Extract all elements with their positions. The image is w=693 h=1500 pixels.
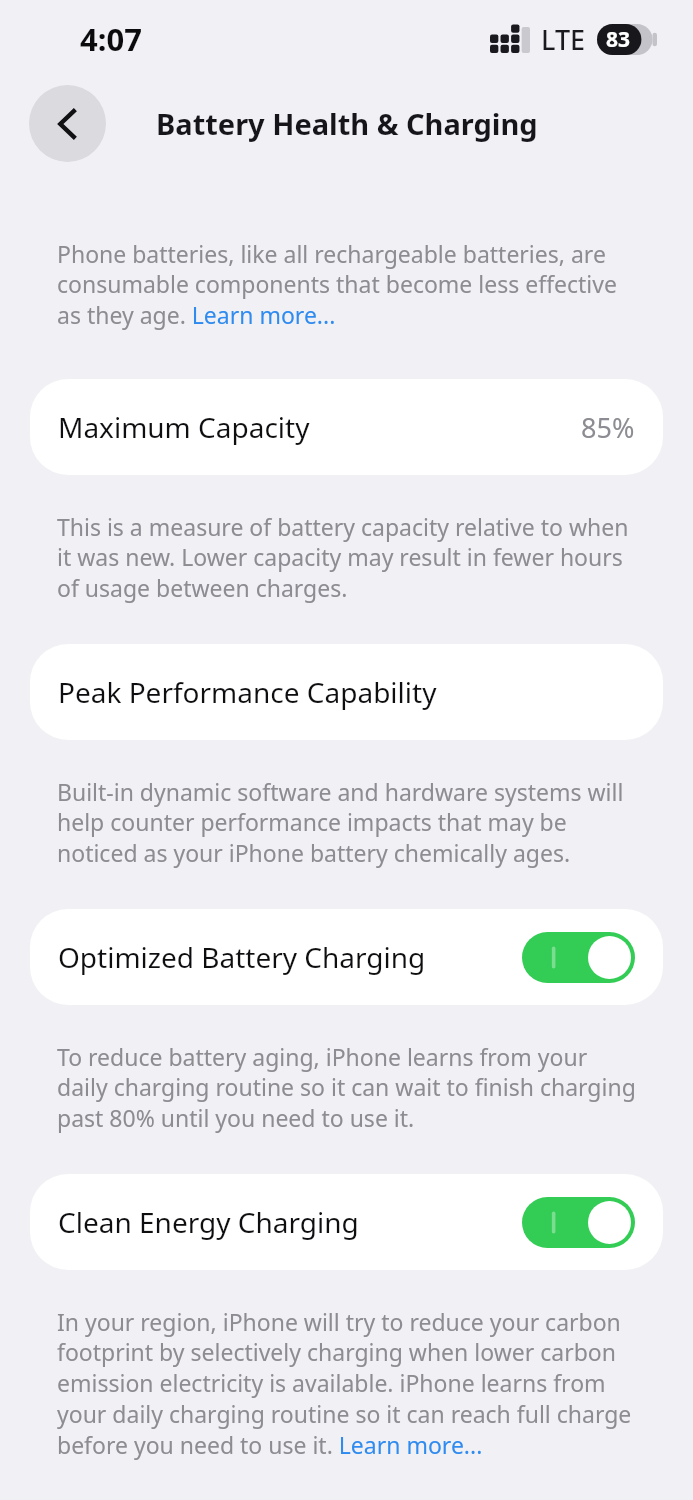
button[interactable]: Toggle	[522, 932, 635, 983]
staticText: Battery Health & Charging	[156, 104, 538, 143]
staticText: Phone batteries, like all rechargeable b…	[57, 238, 636, 331]
staticText: Clean Energy Charging	[58, 1203, 359, 1241]
staticText: Built-in dynamic software and hardware s…	[57, 776, 636, 869]
staticText: 85%	[581, 409, 635, 446]
button[interactable]: Peak Performance Capability	[30, 644, 663, 740]
staticText: Optimized Battery Charging	[58, 938, 426, 976]
staticText: To reduce battery aging, iPhone learns f…	[57, 1041, 636, 1134]
staticText: 4:07	[80, 18, 142, 60]
staticText: In your region, iPhone will try to reduc…	[57, 1306, 636, 1461]
button[interactable]: Back	[29, 85, 106, 162]
staticText: 83	[606, 25, 631, 54]
staticText: This is a measure of battery capacity re…	[57, 511, 636, 604]
button[interactable]: Toggle	[522, 1197, 635, 1248]
button[interactable]: Optimized Battery Charging	[30, 909, 663, 1005]
staticText: Peak Performance Capability	[58, 673, 437, 711]
button[interactable]: Maximum Capacity	[30, 379, 663, 475]
button[interactable]: Clean Energy Charging	[30, 1174, 663, 1270]
staticText: Maximum Capacity	[58, 408, 310, 446]
staticText: LTE	[541, 21, 586, 58]
